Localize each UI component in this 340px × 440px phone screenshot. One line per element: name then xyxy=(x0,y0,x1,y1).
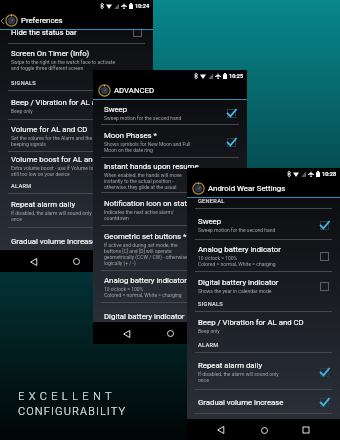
staticText: Digital battery indicator xyxy=(198,278,279,287)
staticText: Hide the status bar xyxy=(11,30,77,37)
staticText: Instant hands upon resume xyxy=(104,162,199,171)
button[interactable]: Gradual volume increase xyxy=(187,390,340,414)
staticText: 10 o'clock = 100% Colored = normal, Whit… xyxy=(198,255,276,267)
staticText: Gradual volume increase xyxy=(198,398,284,407)
staticText: If disabled, the alarm will sound only o… xyxy=(198,371,279,383)
button[interactable]: Home xyxy=(67,252,86,271)
staticText: Beep / Vibration for AL and CD xyxy=(11,98,117,107)
button[interactable]: Digital battery indicator xyxy=(93,303,247,329)
staticText: Sweep xyxy=(198,217,222,226)
staticText: 10 o'clock = 100% Colored = normal, Whit… xyxy=(104,286,182,298)
button[interactable]: Beep / Vibration for AL and CD xyxy=(187,312,340,340)
button[interactable]: Android Wear Settings xyxy=(187,180,340,197)
staticText: Screen On Timer (Info) xyxy=(11,49,90,58)
staticText: Preferences xyxy=(21,16,63,25)
staticText: If disabled, the alarm will sound only o… xyxy=(11,210,92,222)
staticText: Sweep xyxy=(104,105,128,114)
button[interactable]: Recent apps xyxy=(297,421,315,439)
staticText: ADVANCED xyxy=(114,86,155,95)
staticText: EXCELLENT xyxy=(18,390,116,403)
button[interactable]: Back xyxy=(212,421,230,439)
staticText: Volume for AL and CD xyxy=(11,125,88,134)
button[interactable]: Notification icon on status bar xyxy=(93,193,247,226)
staticText: Notification icon on status bar xyxy=(104,199,209,208)
button[interactable]: Instant hands upon resume xyxy=(93,158,247,193)
staticText: Extra volume boost - use if Volume is st… xyxy=(11,165,93,177)
staticText: Shows symbols for New Moon and Full Moon… xyxy=(104,141,191,153)
staticText: Volume boost for AL and CD xyxy=(11,155,110,164)
staticText: SIGNALS xyxy=(198,301,224,308)
staticText: CONFIGURABILITY xyxy=(18,405,127,418)
button[interactable]: Back xyxy=(24,252,43,271)
staticText: Beep / Vibration for AL and CD xyxy=(198,318,304,327)
button[interactable]: Preferences xyxy=(0,12,153,29)
button[interactable]: Analog battery indicator xyxy=(187,240,340,272)
staticText: 10:24 xyxy=(135,3,150,10)
staticText: Analog battery indicator xyxy=(104,276,187,285)
staticText: If active and during set mode, the butto… xyxy=(104,242,188,266)
button[interactable]: Repeat alarm daily xyxy=(187,353,340,390)
button[interactable]: Geometric set buttons * xyxy=(93,226,247,271)
button[interactable]: Repeat alarm daily xyxy=(0,194,153,228)
button[interactable]: Volume boost for AL and CD xyxy=(0,152,153,182)
staticText: Indicates the next active alarm/ countdo… xyxy=(104,209,174,221)
staticText: GENERAL xyxy=(198,198,225,205)
staticText: Sweep motion for the second hand xyxy=(198,227,276,233)
button[interactable]: Volume for AL and CD xyxy=(0,120,153,152)
button[interactable]: Hide the status bar xyxy=(0,30,153,44)
staticText: Sweep motion for the second hand xyxy=(104,115,182,121)
staticText: Digital battery indicator xyxy=(104,312,185,321)
button[interactable]: Moon Phases * xyxy=(93,125,247,158)
button[interactable]: Home xyxy=(161,324,180,343)
button[interactable]: Home xyxy=(255,421,273,439)
staticText: Moon Phases * xyxy=(104,131,157,140)
staticText: ALARM xyxy=(198,342,219,349)
staticText: Repeat alarm daily xyxy=(11,200,76,209)
staticText: Analog battery indicator xyxy=(198,245,281,254)
button[interactable]: Analog battery indicator xyxy=(93,271,247,303)
button[interactable]: ADVANCED xyxy=(93,82,247,99)
staticText: 10:28 xyxy=(322,171,337,178)
button[interactable]: Digital battery indicator xyxy=(187,272,340,299)
staticText: ALARM xyxy=(11,183,32,190)
staticText: Beep only xyxy=(11,108,33,114)
staticText: Android Wear Settings xyxy=(208,184,286,193)
staticText: Swipe to the right on the watch face to … xyxy=(11,59,116,71)
button[interactable]: Sweep xyxy=(187,209,340,240)
staticText: Repeat alarm daily xyxy=(198,361,263,370)
staticText: 10:25 xyxy=(229,73,244,80)
button[interactable]: Back xyxy=(117,324,136,343)
button[interactable]: Screen On Timer (Info) xyxy=(0,44,153,78)
button[interactable]: Gradual volume increase xyxy=(0,228,153,254)
staticText: Geometric set buttons * xyxy=(104,232,187,241)
button[interactable]: Beep / Vibration for AL and CD xyxy=(0,91,153,120)
staticText: Beep only xyxy=(198,328,220,334)
staticText: Shows the year in calendar mode xyxy=(198,288,272,294)
staticText: Gradual volume increase xyxy=(11,237,97,246)
staticText: Set the volume for the Alarm and the bee… xyxy=(11,135,93,147)
staticText: When enabled, the hands will move instan… xyxy=(104,172,182,190)
button[interactable]: Sweep xyxy=(93,100,247,125)
staticText: SIGNALS xyxy=(11,80,37,87)
